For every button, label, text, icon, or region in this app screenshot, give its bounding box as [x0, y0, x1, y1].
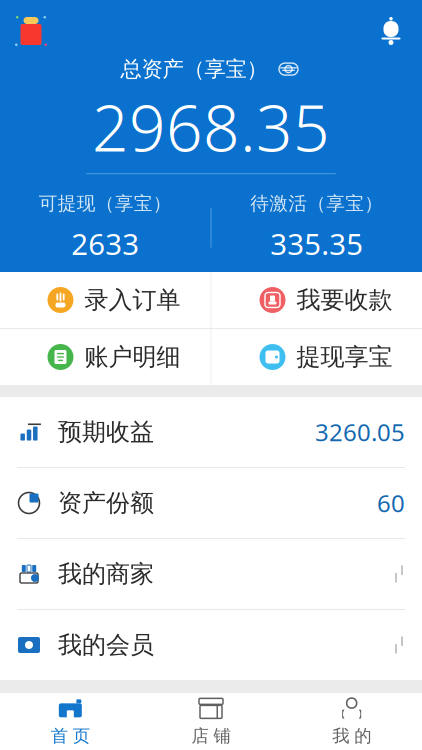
- staticText: 录入订单: [84, 285, 180, 315]
- button[interactable]: 隐藏金额: [275, 58, 301, 80]
- staticText: 335.35: [270, 224, 363, 263]
- button[interactable]: 我的商家: [0, 539, 422, 609]
- staticText: 店 铺: [191, 725, 230, 747]
- staticText: 资产份额: [58, 488, 154, 518]
- staticText: 总资产（享宝）: [120, 56, 267, 82]
- staticText: 我要收款: [296, 285, 392, 315]
- staticText: 60: [377, 487, 405, 519]
- button[interactable]: 店 铺: [141, 693, 281, 750]
- staticText: 2968.35: [92, 84, 330, 169]
- staticText: 可提现（享宝）: [39, 192, 172, 215]
- staticText: 我的商家: [58, 559, 154, 589]
- staticText: 提现享宝: [296, 342, 392, 372]
- button[interactable]: 预期收益: [0, 397, 422, 467]
- staticText: 待激活（享宝）: [250, 192, 383, 215]
- staticText: 首 页: [51, 725, 90, 747]
- staticText: 2633: [71, 224, 139, 263]
- staticText: 预期收益: [58, 417, 154, 447]
- button[interactable]: 资产份额: [0, 468, 422, 538]
- button[interactable]: 我 的: [281, 693, 422, 750]
- button[interactable]: 我的会员: [0, 610, 422, 680]
- button[interactable]: 提现享宝: [211, 329, 422, 385]
- staticText: 我的会员: [58, 630, 154, 660]
- staticText: 我 的: [332, 725, 371, 747]
- staticText: 账户明细: [84, 342, 180, 372]
- button[interactable]: 我要收款: [211, 272, 422, 328]
- button[interactable]: 红包活动: [8, 8, 54, 54]
- button[interactable]: 录入订单: [0, 272, 210, 328]
- staticText: 3260.05: [315, 416, 405, 448]
- button[interactable]: 首 页: [0, 693, 141, 750]
- button[interactable]: 通知: [368, 8, 414, 54]
- button[interactable]: 账户明细: [0, 329, 210, 385]
